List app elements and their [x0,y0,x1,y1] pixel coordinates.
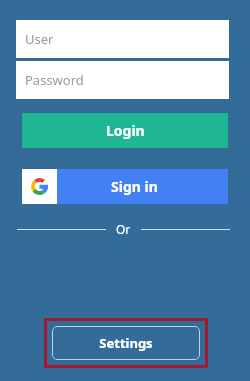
button[interactable]: User [16,20,229,58]
button[interactable]: Login [22,113,228,148]
staticText: Sign in [111,177,158,196]
button[interactable]: Settings [52,326,200,360]
staticText: Password [25,71,84,89]
other: Google [31,178,48,195]
staticText: Or [116,221,131,237]
staticText: Settings [99,334,153,352]
staticText: Login [106,121,145,140]
staticText: User [25,30,54,48]
button[interactable]: Password [16,61,229,99]
button[interactable]: Google [22,169,228,204]
